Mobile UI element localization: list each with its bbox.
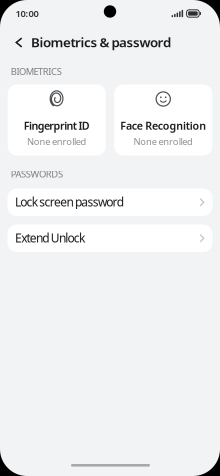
staticText: PASSWORDS bbox=[11, 168, 63, 180]
button[interactable]: Face Recognition bbox=[114, 84, 212, 155]
staticText: Lock screen password bbox=[15, 194, 124, 210]
staticText: BIOMETRICS bbox=[11, 65, 62, 77]
button[interactable]: Lock screen password bbox=[7, 188, 212, 216]
staticText: 10:00 bbox=[15, 7, 38, 20]
button[interactable] bbox=[13, 32, 25, 52]
button[interactable]: Fingerprint ID bbox=[8, 84, 106, 155]
staticText: Face Recognition bbox=[120, 118, 206, 133]
button[interactable]: Extend Unlock bbox=[7, 224, 212, 252]
staticText: None enrolled bbox=[27, 135, 87, 147]
staticText: None enrolled bbox=[133, 135, 193, 147]
staticText: Biometrics & password bbox=[31, 33, 171, 51]
staticText: Fingerprint ID bbox=[24, 118, 90, 133]
staticText: Extend Unlock bbox=[15, 230, 85, 246]
